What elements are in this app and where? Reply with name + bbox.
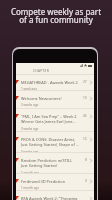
staticText: Ferdinand 3D Prediction xyxy=(21,179,66,184)
staticText: PROS & CONS: Disaster Artist, Just Getti… xyxy=(21,137,79,148)
button[interactable]: CHAPTER xyxy=(16,68,94,74)
staticText: 12 xyxy=(83,137,87,141)
staticText: 1 week ago xyxy=(21,87,37,91)
staticText: Random Prediction: w/STILL Just Getting … xyxy=(21,158,79,169)
staticText: “FML, I Am Sea Pmp” -- Week 2 Winner Get… xyxy=(21,114,79,125)
staticText: 2 weeks ago xyxy=(21,103,39,107)
staticText: 8 xyxy=(85,158,87,162)
button[interactable]: BFA Awards Week 2: “Throwing xyxy=(16,191,94,200)
button[interactable]: MEGATHREAD - Awards Week 2 xyxy=(16,75,94,91)
staticText: Compete weekly as part of a fun communit… xyxy=(0,6,112,25)
staticText: 1 month ago xyxy=(21,186,40,190)
button[interactable]: Welcome Newcomers! xyxy=(16,91,94,109)
staticText: MEGATHREAD - Awards Week 2 xyxy=(21,80,78,85)
button[interactable]: PROS & CONS: Disaster Artist, Just Getti… xyxy=(16,132,94,153)
button[interactable]: Random Prediction: w/STILL Just Getting … xyxy=(16,153,94,174)
button[interactable]: Ferdinand 3D Prediction xyxy=(16,174,94,191)
staticText: 1 month ago xyxy=(21,171,40,174)
staticText: BFA Awards Week 2: “Throwing xyxy=(21,196,78,200)
button[interactable]: “FML, I Am Sea Pmp” -- Week 2 Winner Get… xyxy=(16,109,94,132)
staticText: 27 xyxy=(83,80,87,84)
staticText: 3 weeks ago xyxy=(21,127,39,131)
staticText: Welcome Newcomers! xyxy=(21,96,62,101)
staticText: 13 xyxy=(83,96,87,100)
staticText: CHAPTER xyxy=(33,69,49,73)
staticText: 3 weeks ago xyxy=(21,150,39,153)
staticText: 45 xyxy=(83,114,87,118)
staticText: 3 xyxy=(85,179,87,183)
